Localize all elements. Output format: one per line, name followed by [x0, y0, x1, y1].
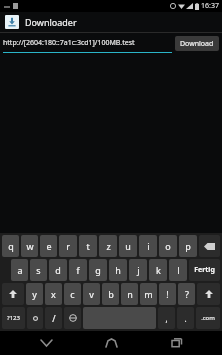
button[interactable]: Shift [197, 283, 220, 305]
button[interactable]: h [109, 259, 127, 281]
button[interactable]: n [121, 283, 138, 305]
staticText: v [89, 288, 94, 300]
staticText: z [106, 240, 111, 252]
button[interactable]: d [49, 259, 67, 281]
button[interactable]: Recent apps [157, 331, 197, 355]
button[interactable]: Fertig [189, 259, 220, 281]
staticText: i [147, 240, 150, 252]
button[interactable]: Home [91, 331, 131, 355]
button[interactable]: Keyboard settings [27, 307, 43, 329]
button[interactable]: ?123 [2, 307, 25, 329]
staticText: Fertig [194, 265, 215, 275]
staticText: l [177, 264, 180, 276]
staticText: .com [201, 314, 215, 322]
staticText: g [95, 264, 101, 276]
staticText: ?123 [7, 314, 20, 322]
staticText: m [144, 288, 153, 300]
staticText: http://[2604:180::7a1c:3cd1]/100MB.test [3, 38, 135, 48]
staticText: 16:37 [201, 1, 219, 11]
staticText: s [36, 264, 41, 276]
button[interactable]: z [99, 235, 117, 257]
button[interactable]: , [158, 307, 175, 329]
button[interactable]: x [45, 283, 62, 305]
staticText: o [165, 240, 171, 252]
staticText: f [76, 264, 80, 276]
staticText: r [66, 240, 70, 252]
button[interactable]: v [83, 283, 100, 305]
staticText: d [55, 264, 61, 276]
button[interactable]: Back [26, 331, 66, 355]
staticText: / [52, 312, 56, 324]
button[interactable]: i [139, 235, 157, 257]
button[interactable]: Download [180, 36, 214, 51]
staticText: p [185, 240, 191, 252]
button[interactable]: y [26, 283, 43, 305]
staticText: u [125, 240, 131, 252]
button[interactable]: u [119, 235, 137, 257]
button[interactable]: f [69, 259, 87, 281]
staticText: a [17, 264, 23, 276]
button[interactable]: g [89, 259, 107, 281]
button[interactable]: r [59, 235, 77, 257]
staticText: ! [166, 288, 169, 300]
button[interactable]: / [45, 307, 62, 329]
staticText: Downloader [25, 16, 77, 28]
staticText: e [46, 240, 52, 252]
button[interactable]: s [30, 259, 47, 281]
button[interactable]: m [140, 283, 157, 305]
button[interactable]: ? [178, 283, 195, 305]
staticText: q [8, 240, 14, 252]
button[interactable]: t [79, 235, 97, 257]
button[interactable]: j [129, 259, 147, 281]
staticText: y [32, 288, 37, 300]
button[interactable]: p [179, 235, 197, 257]
staticText: x [51, 288, 56, 300]
button[interactable]: .com [196, 307, 220, 329]
button[interactable]: k [149, 259, 167, 281]
button[interactable]: o [159, 235, 177, 257]
staticText: t [86, 240, 90, 252]
button[interactable]: w [21, 235, 38, 257]
staticText: n [127, 288, 133, 300]
button[interactable]: a [11, 259, 28, 281]
button[interactable]: b [102, 283, 119, 305]
staticText: k [156, 264, 161, 276]
button[interactable]: Change language [64, 307, 81, 329]
staticText: b [108, 288, 114, 300]
other: Downloader app icon [5, 15, 19, 29]
staticText: Download [180, 39, 214, 49]
button[interactable]: q [2, 235, 19, 257]
staticText: . [184, 313, 187, 324]
button[interactable]: . [177, 307, 194, 329]
staticText: c [70, 288, 75, 300]
button[interactable]: Shift [2, 283, 24, 305]
staticText: w [26, 240, 34, 252]
staticText: j [137, 264, 140, 276]
button[interactable]: c [64, 283, 81, 305]
staticText: h [115, 264, 121, 276]
staticText: ? [185, 288, 189, 300]
button[interactable]: Backspace [199, 235, 220, 257]
button[interactable]: l [169, 259, 187, 281]
button[interactable]: e [40, 235, 57, 257]
button[interactable]: http://[2604:180::7a1c:3cd1]/100MB.test [3, 33, 172, 53]
staticText: , [165, 313, 168, 324]
button[interactable]: ! [159, 283, 176, 305]
